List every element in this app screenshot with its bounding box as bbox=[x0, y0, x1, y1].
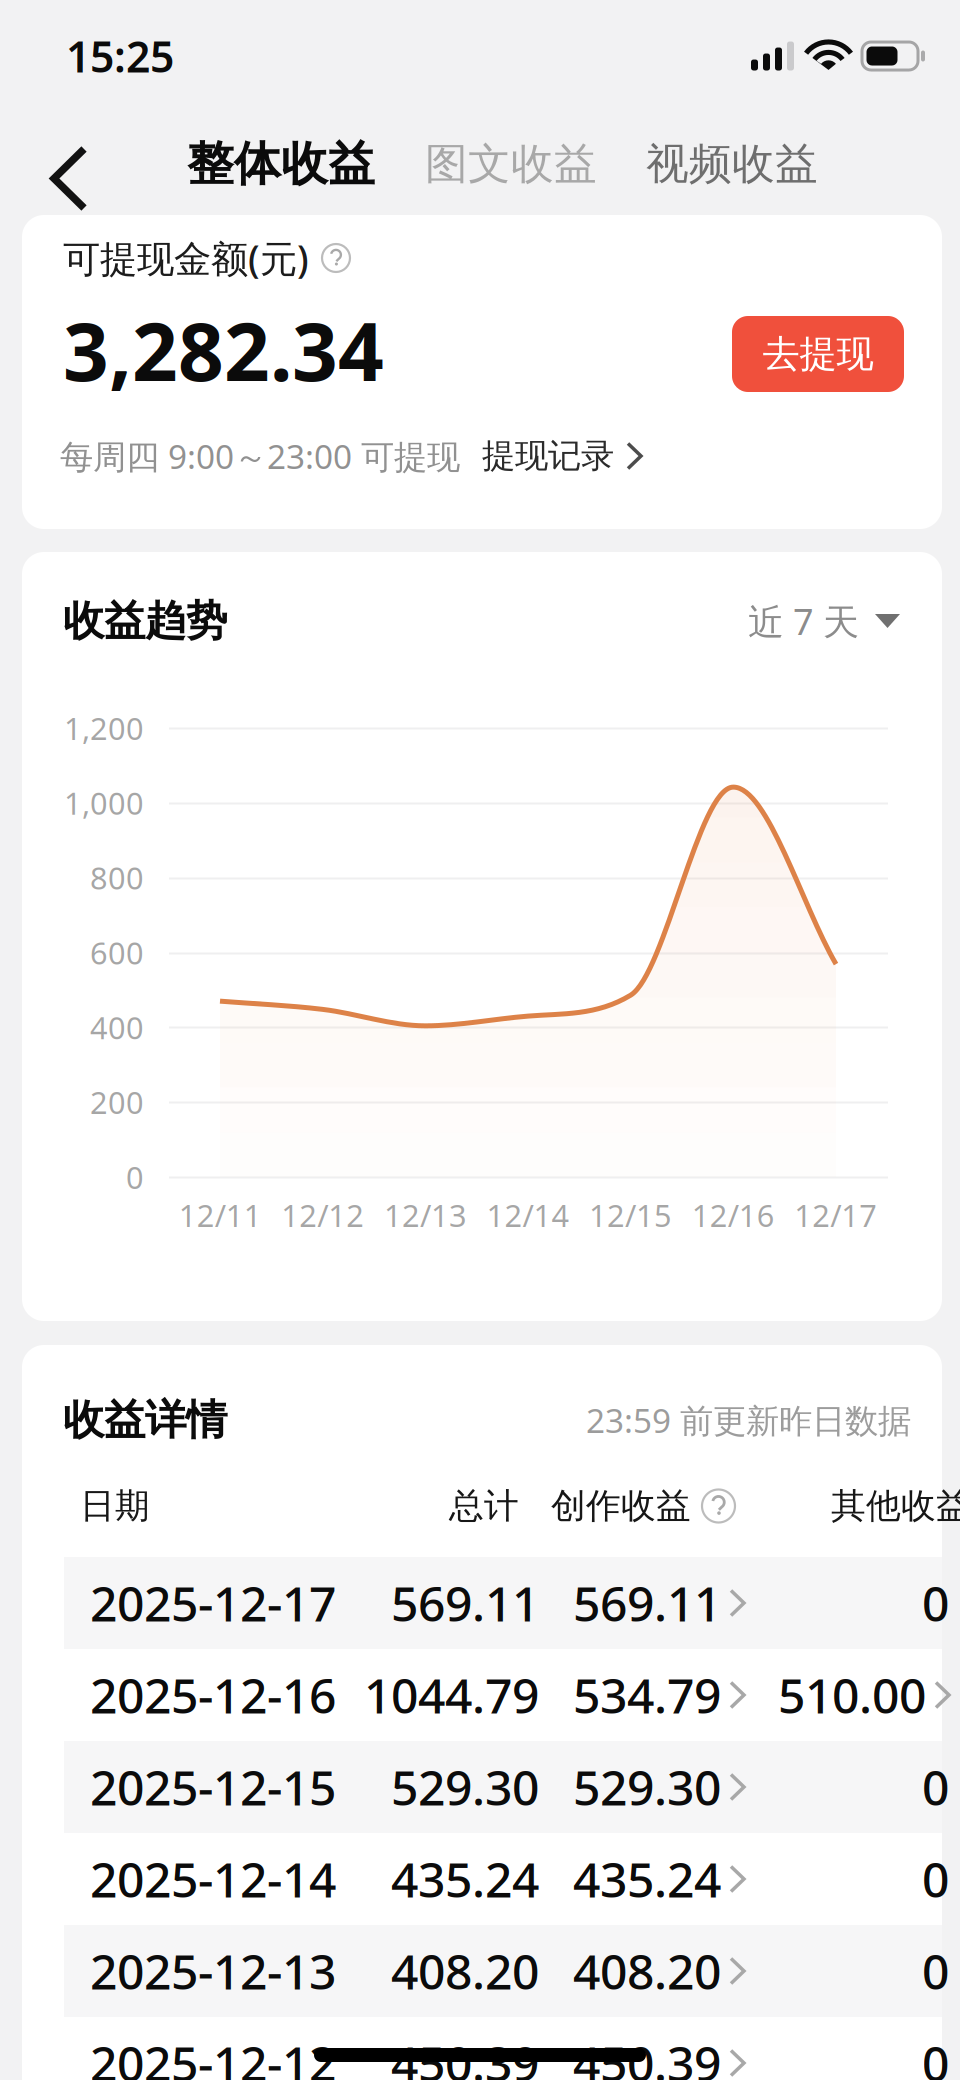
staticText: 450.39 bbox=[573, 2031, 721, 2080]
staticText: 其他收益 bbox=[831, 1485, 960, 1527]
staticText: 创作收益 bbox=[551, 1485, 691, 1527]
staticText: 400 bbox=[90, 1007, 144, 1048]
staticText: 2025-12-12 bbox=[90, 2031, 336, 2080]
staticText: 提现记录 bbox=[482, 435, 614, 476]
staticText: 日期 bbox=[80, 1485, 150, 1527]
staticText: 12/14 bbox=[486, 1195, 569, 1235]
button[interactable]: 2025-12-12 bbox=[22, 2017, 942, 2080]
staticText: 12/15 bbox=[589, 1195, 672, 1235]
staticText: 2025-12-14 bbox=[90, 1847, 336, 1911]
button[interactable]: 提现记录 bbox=[460, 431, 641, 481]
staticText: 整体收益 bbox=[187, 135, 375, 193]
staticText: 2025-12-17 bbox=[90, 1571, 336, 1635]
staticText: 200 bbox=[90, 1082, 144, 1122]
button[interactable]: 2025-12-13 bbox=[22, 1925, 942, 2017]
staticText: 435.24 bbox=[573, 1847, 721, 1911]
staticText: 12/17 bbox=[794, 1195, 877, 1235]
staticText: 408.20 bbox=[391, 1939, 539, 2003]
staticText: 收益趋势 bbox=[63, 596, 227, 646]
button[interactable]: 2025-12-14 bbox=[22, 1833, 942, 1925]
button[interactable]: Back bbox=[0, 127, 124, 230]
staticText: 0 bbox=[922, 2031, 949, 2080]
staticText: 800 bbox=[90, 857, 144, 898]
staticText: 每周四 9:00～23:00 可提现 bbox=[60, 434, 460, 478]
staticText: 可提现金额(元) bbox=[63, 233, 309, 283]
staticText: 图文收益 bbox=[425, 138, 597, 190]
staticText: 450.39 bbox=[391, 2031, 539, 2080]
staticText: 600 bbox=[90, 932, 144, 973]
staticText: 0 bbox=[126, 1157, 144, 1197]
staticText: 2025-12-16 bbox=[90, 1663, 336, 1727]
staticText: 12/12 bbox=[281, 1195, 364, 1235]
staticText: 408.20 bbox=[573, 1939, 721, 2003]
staticText: 视频收益 bbox=[646, 138, 818, 190]
staticText: 去提现 bbox=[762, 331, 873, 377]
staticText: 435.24 bbox=[391, 1847, 539, 1911]
staticText: 529.30 bbox=[391, 1755, 539, 1819]
staticText: 0 bbox=[922, 1571, 949, 1635]
staticText: 534.79 bbox=[573, 1663, 721, 1727]
staticText: 12/11 bbox=[179, 1195, 262, 1235]
staticText: 569.11 bbox=[573, 1571, 721, 1635]
staticText: 510.00 bbox=[778, 1663, 926, 1727]
staticText: 近 7 天 bbox=[748, 597, 859, 645]
staticText: 569.11 bbox=[391, 1571, 539, 1635]
button[interactable]: 2025-12-17 bbox=[22, 1557, 942, 1649]
button[interactable]: 去提现 bbox=[732, 316, 904, 392]
button[interactable]: 2025-12-16 bbox=[22, 1649, 942, 1741]
staticText: 529.30 bbox=[573, 1755, 721, 1819]
button[interactable]: 图文收益 bbox=[415, 124, 607, 204]
staticText: 1044.79 bbox=[364, 1663, 539, 1727]
staticText: 15:25 bbox=[66, 28, 174, 84]
staticText: 3,282.34 bbox=[63, 297, 384, 403]
staticText: 2025-12-13 bbox=[90, 1939, 336, 2003]
staticText: 12/13 bbox=[384, 1195, 467, 1235]
staticText: 1,000 bbox=[64, 782, 144, 823]
button[interactable]: 近 7 天 bbox=[748, 592, 900, 650]
button[interactable]: 视频收益 bbox=[636, 124, 828, 204]
staticText: 12/16 bbox=[692, 1195, 775, 1235]
button[interactable]: 2025-12-15 bbox=[22, 1741, 942, 1833]
staticText: 23:59 前更新昨日数据 bbox=[586, 1398, 911, 1442]
staticText: 0 bbox=[922, 1847, 949, 1911]
staticText: 0 bbox=[922, 1755, 949, 1819]
staticText: 收益详情 bbox=[63, 1395, 227, 1445]
staticText: 2025-12-15 bbox=[90, 1755, 336, 1819]
staticText: 0 bbox=[922, 1939, 949, 2003]
staticText: 1,200 bbox=[64, 708, 144, 748]
button[interactable]: 整体收益 bbox=[177, 124, 385, 204]
staticText: 总计 bbox=[449, 1485, 519, 1527]
